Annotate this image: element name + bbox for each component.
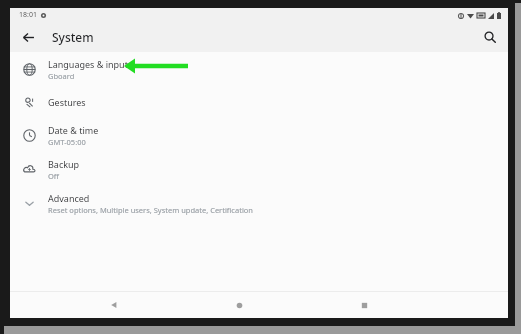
button[interactable]: Search [479, 26, 501, 48]
button[interactable]: Date & time [10, 118, 508, 152]
button[interactable]: Home [226, 292, 252, 318]
staticText: Gboard [48, 71, 75, 81]
staticText: Reset options, Multiple users, System up… [48, 205, 253, 215]
staticText: GMT-05:00 [48, 137, 86, 147]
staticText: System [52, 29, 94, 45]
staticText: Gestures [48, 96, 86, 108]
button[interactable]: Recent apps [351, 292, 377, 318]
button[interactable]: Back [17, 26, 39, 48]
button[interactable]: Backup [10, 152, 508, 186]
staticText: 18:01 [19, 10, 37, 20]
staticText: Backup [48, 158, 80, 170]
staticText: Date & time [48, 124, 99, 136]
button[interactable]: Languages & input [10, 52, 508, 86]
button[interactable]: Advanced [10, 186, 508, 220]
button[interactable]: Back [101, 292, 127, 318]
button[interactable]: Gestures [10, 86, 508, 118]
staticText: Languages & input [48, 58, 128, 70]
staticText: Off [48, 171, 60, 181]
staticText: Advanced [48, 192, 90, 204]
